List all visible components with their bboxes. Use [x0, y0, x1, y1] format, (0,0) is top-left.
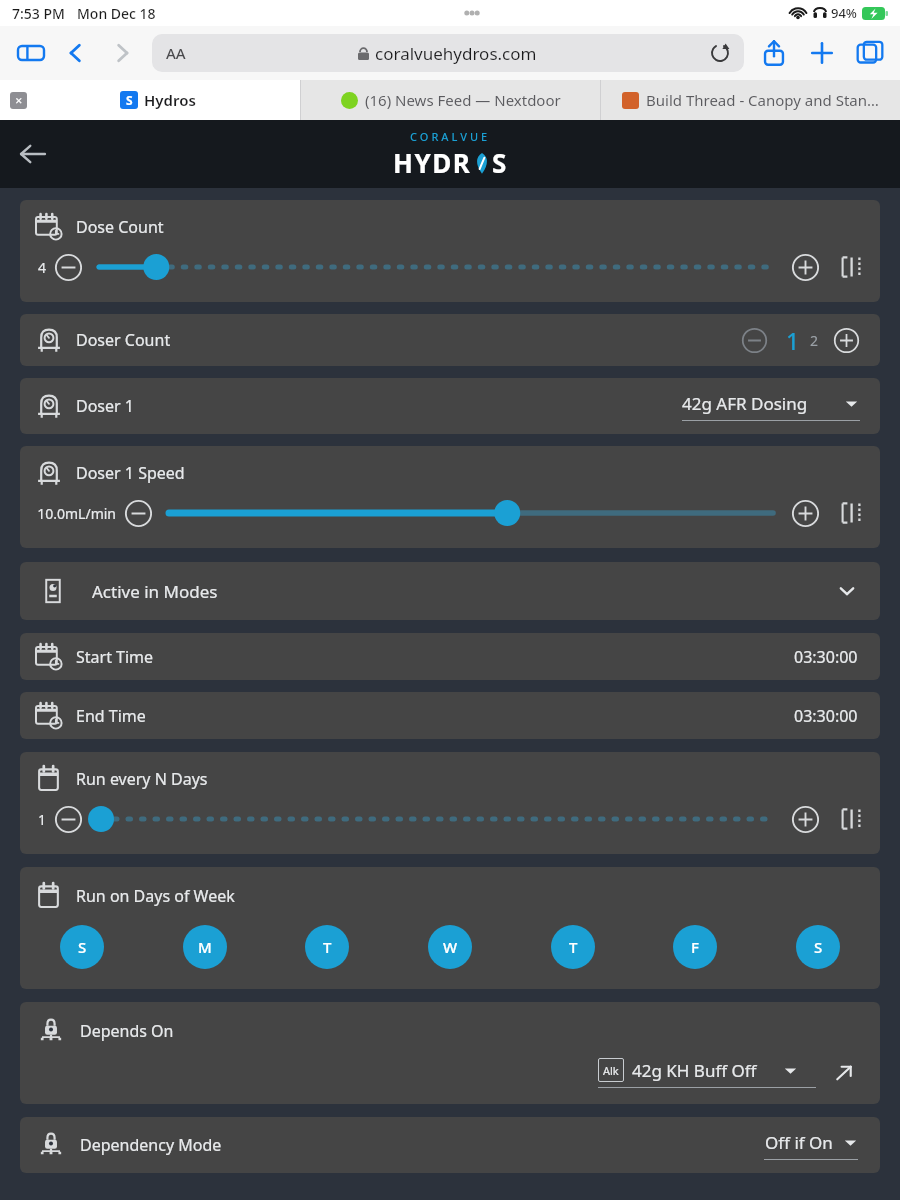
- staticText: Depends On: [80, 1020, 174, 1042]
- staticText: 42g KH Buff Off: [632, 1059, 757, 1082]
- staticText: (16) News Feed — Nextdoor: [365, 90, 561, 110]
- staticText: 03:30:00: [794, 646, 858, 668]
- button[interactable]: [54, 805, 83, 834]
- staticText: 2: [810, 331, 819, 350]
- button[interactable]: Increase: [791, 805, 820, 834]
- button[interactable]: Build Thread - Canopy and Stan…: [601, 80, 900, 120]
- staticText: 94%: [831, 4, 857, 22]
- staticText: 1: [786, 325, 800, 356]
- staticText: Doser Count: [76, 329, 171, 351]
- button[interactable]: Forward: [108, 39, 136, 67]
- staticText: Doser 1 Speed: [76, 462, 185, 484]
- button[interactable]: Start Time: [20, 633, 880, 680]
- staticText: Active in Modes: [92, 580, 218, 603]
- button[interactable]: [124, 499, 153, 528]
- button[interactable]: New tab: [808, 39, 836, 67]
- staticText: Build Thread - Canopy and Stan…: [646, 90, 879, 110]
- staticText: coralvuehydros.com: [375, 42, 537, 65]
- button[interactable]: (16) News Feed — Nextdoor: [301, 80, 600, 120]
- button[interactable]: Range limits: [836, 252, 866, 282]
- button[interactable]: Dependency Mode: [20, 1117, 880, 1173]
- button[interactable]: 1: [786, 325, 800, 356]
- staticText: W: [443, 937, 458, 957]
- staticText: End Time: [76, 705, 146, 727]
- button[interactable]: End Time: [20, 692, 880, 739]
- staticText: 7:53 PM: [12, 4, 65, 23]
- button[interactable]: Doser 1: [20, 378, 880, 434]
- button[interactable]: Sidebar: [16, 38, 46, 68]
- staticText: HYDR: [393, 145, 472, 180]
- button[interactable]: Share: [760, 39, 788, 67]
- button[interactable]: T: [551, 925, 595, 969]
- staticText: Run every N Days: [76, 768, 208, 790]
- button[interactable]: Range limits: [836, 498, 866, 528]
- staticText: M: [198, 937, 212, 957]
- staticText: Off if On: [765, 1131, 833, 1154]
- button[interactable]: Range limits: [836, 804, 866, 834]
- staticText: S: [78, 937, 87, 957]
- button[interactable]: Alk: [598, 1058, 816, 1088]
- staticText: Dose Count: [76, 216, 164, 238]
- staticText: S: [126, 92, 133, 108]
- button[interactable]: Tabs: [856, 39, 884, 67]
- button[interactable]: Active in Modes: [20, 562, 880, 620]
- staticText: S: [814, 937, 823, 957]
- button[interactable]: Increase doser count: [833, 327, 860, 354]
- button[interactable]: Close tab: [0, 80, 300, 120]
- button[interactable]: [54, 253, 83, 282]
- button[interactable]: M: [183, 925, 227, 969]
- button[interactable]: Increase: [791, 499, 820, 528]
- button[interactable]: S: [796, 925, 840, 969]
- staticText: T: [323, 937, 332, 957]
- staticText: AA: [166, 43, 186, 63]
- button[interactable]: 2: [810, 331, 819, 350]
- staticText: CORALVUE: [410, 129, 491, 144]
- button[interactable]: Decrease doser count: [741, 327, 768, 354]
- button[interactable]: AA: [152, 34, 744, 72]
- staticText: F: [691, 937, 699, 957]
- button[interactable]: T: [305, 925, 349, 969]
- button[interactable]: S: [60, 925, 104, 969]
- button[interactable]: Back: [62, 39, 90, 67]
- staticText: Hydros: [144, 90, 196, 110]
- staticText: 1: [30, 810, 46, 829]
- staticText: Mon Dec 18: [77, 4, 156, 23]
- button[interactable]: Close tab: [10, 92, 27, 109]
- staticText: Run on Days of Week: [76, 885, 235, 907]
- button[interactable]: W: [428, 925, 472, 969]
- staticText: 42g AFR Dosing: [682, 392, 808, 415]
- button[interactable]: Reload: [710, 43, 730, 63]
- button[interactable]: Increase: [791, 253, 820, 282]
- staticText: 10.0mL/min: [30, 504, 116, 523]
- button[interactable]: Back: [16, 137, 50, 171]
- staticText: T: [569, 937, 578, 957]
- staticText: Start Time: [76, 646, 154, 668]
- button[interactable]: F: [673, 925, 717, 969]
- staticText: 4: [30, 258, 46, 277]
- button[interactable]: Open dependency: [832, 1061, 856, 1085]
- staticText: 03:30:00: [794, 705, 858, 727]
- staticText: Doser 1: [76, 395, 134, 417]
- staticText: S: [492, 145, 508, 180]
- staticText: Dependency Mode: [80, 1134, 222, 1156]
- staticText: Alk: [603, 1063, 619, 1078]
- staticText: ✕: [15, 96, 23, 106]
